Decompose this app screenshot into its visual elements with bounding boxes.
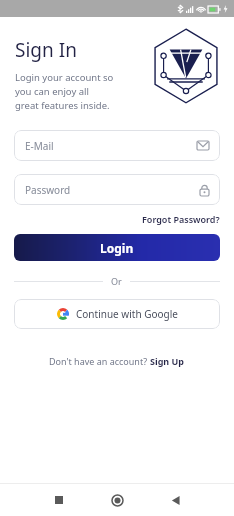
- staticText: Sign In: [15, 37, 77, 63]
- staticText: Forgot Password?: [142, 213, 220, 225]
- staticText: Login: [100, 240, 134, 256]
- button[interactable]: Back: [146, 484, 204, 516]
- staticText: Sign Up: [150, 355, 185, 367]
- button[interactable]: Sign Up: [150, 355, 185, 367]
- staticText: E-Mail: [25, 139, 197, 153]
- button[interactable]: Continue with Google: [14, 299, 220, 329]
- button[interactable]: E-Mail: [14, 130, 220, 161]
- button[interactable]: Forgot Password?: [142, 211, 220, 227]
- button[interactable]: Password: [14, 174, 220, 205]
- staticText: Login your account so you can enjoy all …: [15, 71, 114, 112]
- button[interactable]: Login: [14, 234, 220, 261]
- staticText: Continue with Google: [76, 307, 178, 321]
- staticText: Password: [25, 183, 200, 197]
- staticText: Don't have an account?: [49, 355, 150, 367]
- staticText: Or: [111, 275, 122, 287]
- button[interactable]: Recent apps: [30, 484, 88, 516]
- button[interactable]: Home: [88, 484, 146, 516]
